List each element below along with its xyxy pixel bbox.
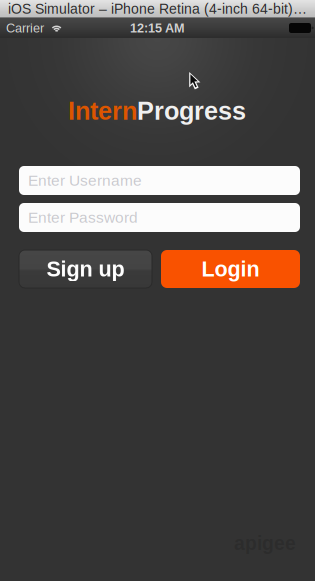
- staticText: iOS Simulator – iPhone Retina (4-inch 64…: [8, 1, 307, 17]
- staticText: 12:15 AM: [130, 21, 185, 35]
- staticText: Progress: [137, 97, 246, 125]
- staticText: Carrier: [6, 21, 44, 35]
- staticText: Enter Username: [28, 172, 142, 189]
- button[interactable]: Login: [161, 250, 300, 288]
- staticText: Sign up: [46, 257, 124, 281]
- staticText: Login: [201, 257, 259, 281]
- button[interactable]: Enter Username: [19, 166, 300, 195]
- button[interactable]: Sign up: [19, 250, 152, 288]
- staticText: Enter Password: [28, 209, 138, 226]
- button[interactable]: Enter Password: [19, 203, 300, 232]
- staticText: Intern: [68, 97, 137, 125]
